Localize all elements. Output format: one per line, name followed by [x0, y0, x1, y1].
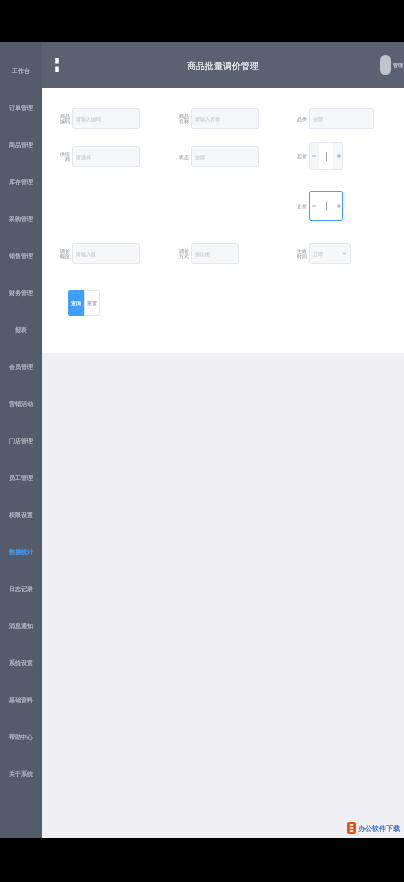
button[interactable]: 系统设置	[0, 644, 42, 681]
staticText: 重置	[87, 300, 97, 306]
staticText: 报表	[15, 326, 27, 334]
staticText: 系统设置	[9, 659, 33, 667]
staticText: 止价	[296, 203, 307, 209]
staticText: 状态	[178, 154, 189, 160]
button[interactable]: 帮助中心	[0, 718, 42, 755]
staticText: 全部	[195, 154, 205, 160]
button[interactable]: 采购管理	[0, 200, 42, 237]
staticText: 全部	[313, 116, 323, 122]
button[interactable]: 权限设置	[0, 496, 42, 533]
staticText: 请输入值	[76, 251, 96, 257]
button[interactable]: Decrease	[309, 142, 318, 170]
staticText: 工作台	[12, 67, 30, 75]
button[interactable]: 关于系统	[0, 755, 42, 792]
staticText: 请输入编码	[76, 116, 101, 122]
button[interactable]: Account	[380, 55, 403, 75]
button[interactable]: 库存管理	[0, 163, 42, 200]
button[interactable]: 起价	[296, 142, 343, 170]
button[interactable]: 商品名称	[178, 108, 259, 129]
staticText: 立即	[313, 251, 323, 257]
staticText: 权限设置	[9, 511, 33, 519]
button[interactable]: 调价幅度	[59, 243, 140, 264]
button[interactable]: 员工管理	[0, 459, 42, 496]
button[interactable]: Increase	[334, 191, 343, 221]
button[interactable]: 品类	[296, 108, 374, 129]
staticText: 库存管理	[9, 178, 33, 186]
staticText: 会员管理	[9, 363, 33, 371]
button[interactable]: 重置	[84, 290, 100, 316]
button[interactable]: 订单管理	[0, 89, 42, 126]
button[interactable]: 查询	[68, 290, 84, 316]
staticText: 按比例	[195, 251, 210, 257]
staticText: 营销活动	[9, 400, 33, 408]
button[interactable]: Toggle menu	[46, 54, 68, 76]
button[interactable]: 消息通知	[0, 607, 42, 644]
staticText: 数据统计	[9, 548, 33, 556]
button[interactable]: 状态	[178, 146, 259, 167]
button[interactable]: 营销活动	[0, 385, 42, 422]
staticText: 基础资料	[9, 696, 33, 704]
staticText: 采购管理	[9, 215, 33, 223]
staticText: 品类	[296, 116, 307, 122]
button[interactable]: 门店管理	[0, 422, 42, 459]
staticText: 起价	[296, 153, 307, 159]
staticText: 门店管理	[9, 437, 33, 445]
button[interactable]: Increase	[334, 142, 343, 170]
button[interactable]: 基础资料	[0, 681, 42, 718]
button[interactable]: Decrease	[309, 191, 318, 221]
staticText: 商品批量调价管理	[187, 60, 259, 71]
button[interactable]: 供应商	[59, 146, 140, 167]
staticText: 调价方式	[178, 248, 189, 260]
staticText: 请选择	[76, 154, 91, 160]
button[interactable]: 调价方式	[178, 243, 239, 264]
staticText: 请输入名称	[195, 116, 220, 122]
staticText: 帮助中心	[9, 733, 33, 741]
button[interactable]: 工作台	[0, 52, 42, 89]
staticText: 商品编码	[59, 113, 70, 125]
button[interactable]: 生效时间	[296, 243, 351, 264]
staticText: 查询	[71, 300, 81, 306]
button[interactable]: 商品编码	[59, 108, 140, 129]
staticText: 管理	[393, 62, 403, 68]
button[interactable]: 财务管理	[0, 274, 42, 311]
staticText: 财务管理	[9, 289, 33, 297]
staticText: 商品管理	[9, 141, 33, 149]
staticText: 消息通知	[9, 622, 33, 630]
button[interactable]: 商品管理	[0, 126, 42, 163]
staticText: 日志记录	[9, 585, 33, 593]
staticText: 销售管理	[9, 252, 33, 260]
button[interactable]: 止价	[296, 191, 343, 221]
staticText: 商品名称	[178, 113, 189, 125]
button[interactable]: 日志记录	[0, 570, 42, 607]
staticText: 员工管理	[9, 474, 33, 482]
staticText: 生效时间	[296, 248, 307, 260]
button[interactable]: 销售管理	[0, 237, 42, 274]
staticText: 办公软件下载	[358, 824, 400, 833]
button[interactable]: 会员管理	[0, 348, 42, 385]
staticText: 关于系统	[9, 770, 33, 778]
staticText: 订单管理	[9, 104, 33, 112]
button[interactable]: 数据统计	[0, 533, 42, 570]
staticText: 调价幅度	[59, 248, 70, 260]
button[interactable]: 报表	[0, 311, 42, 348]
staticText: 供应商	[59, 151, 70, 163]
